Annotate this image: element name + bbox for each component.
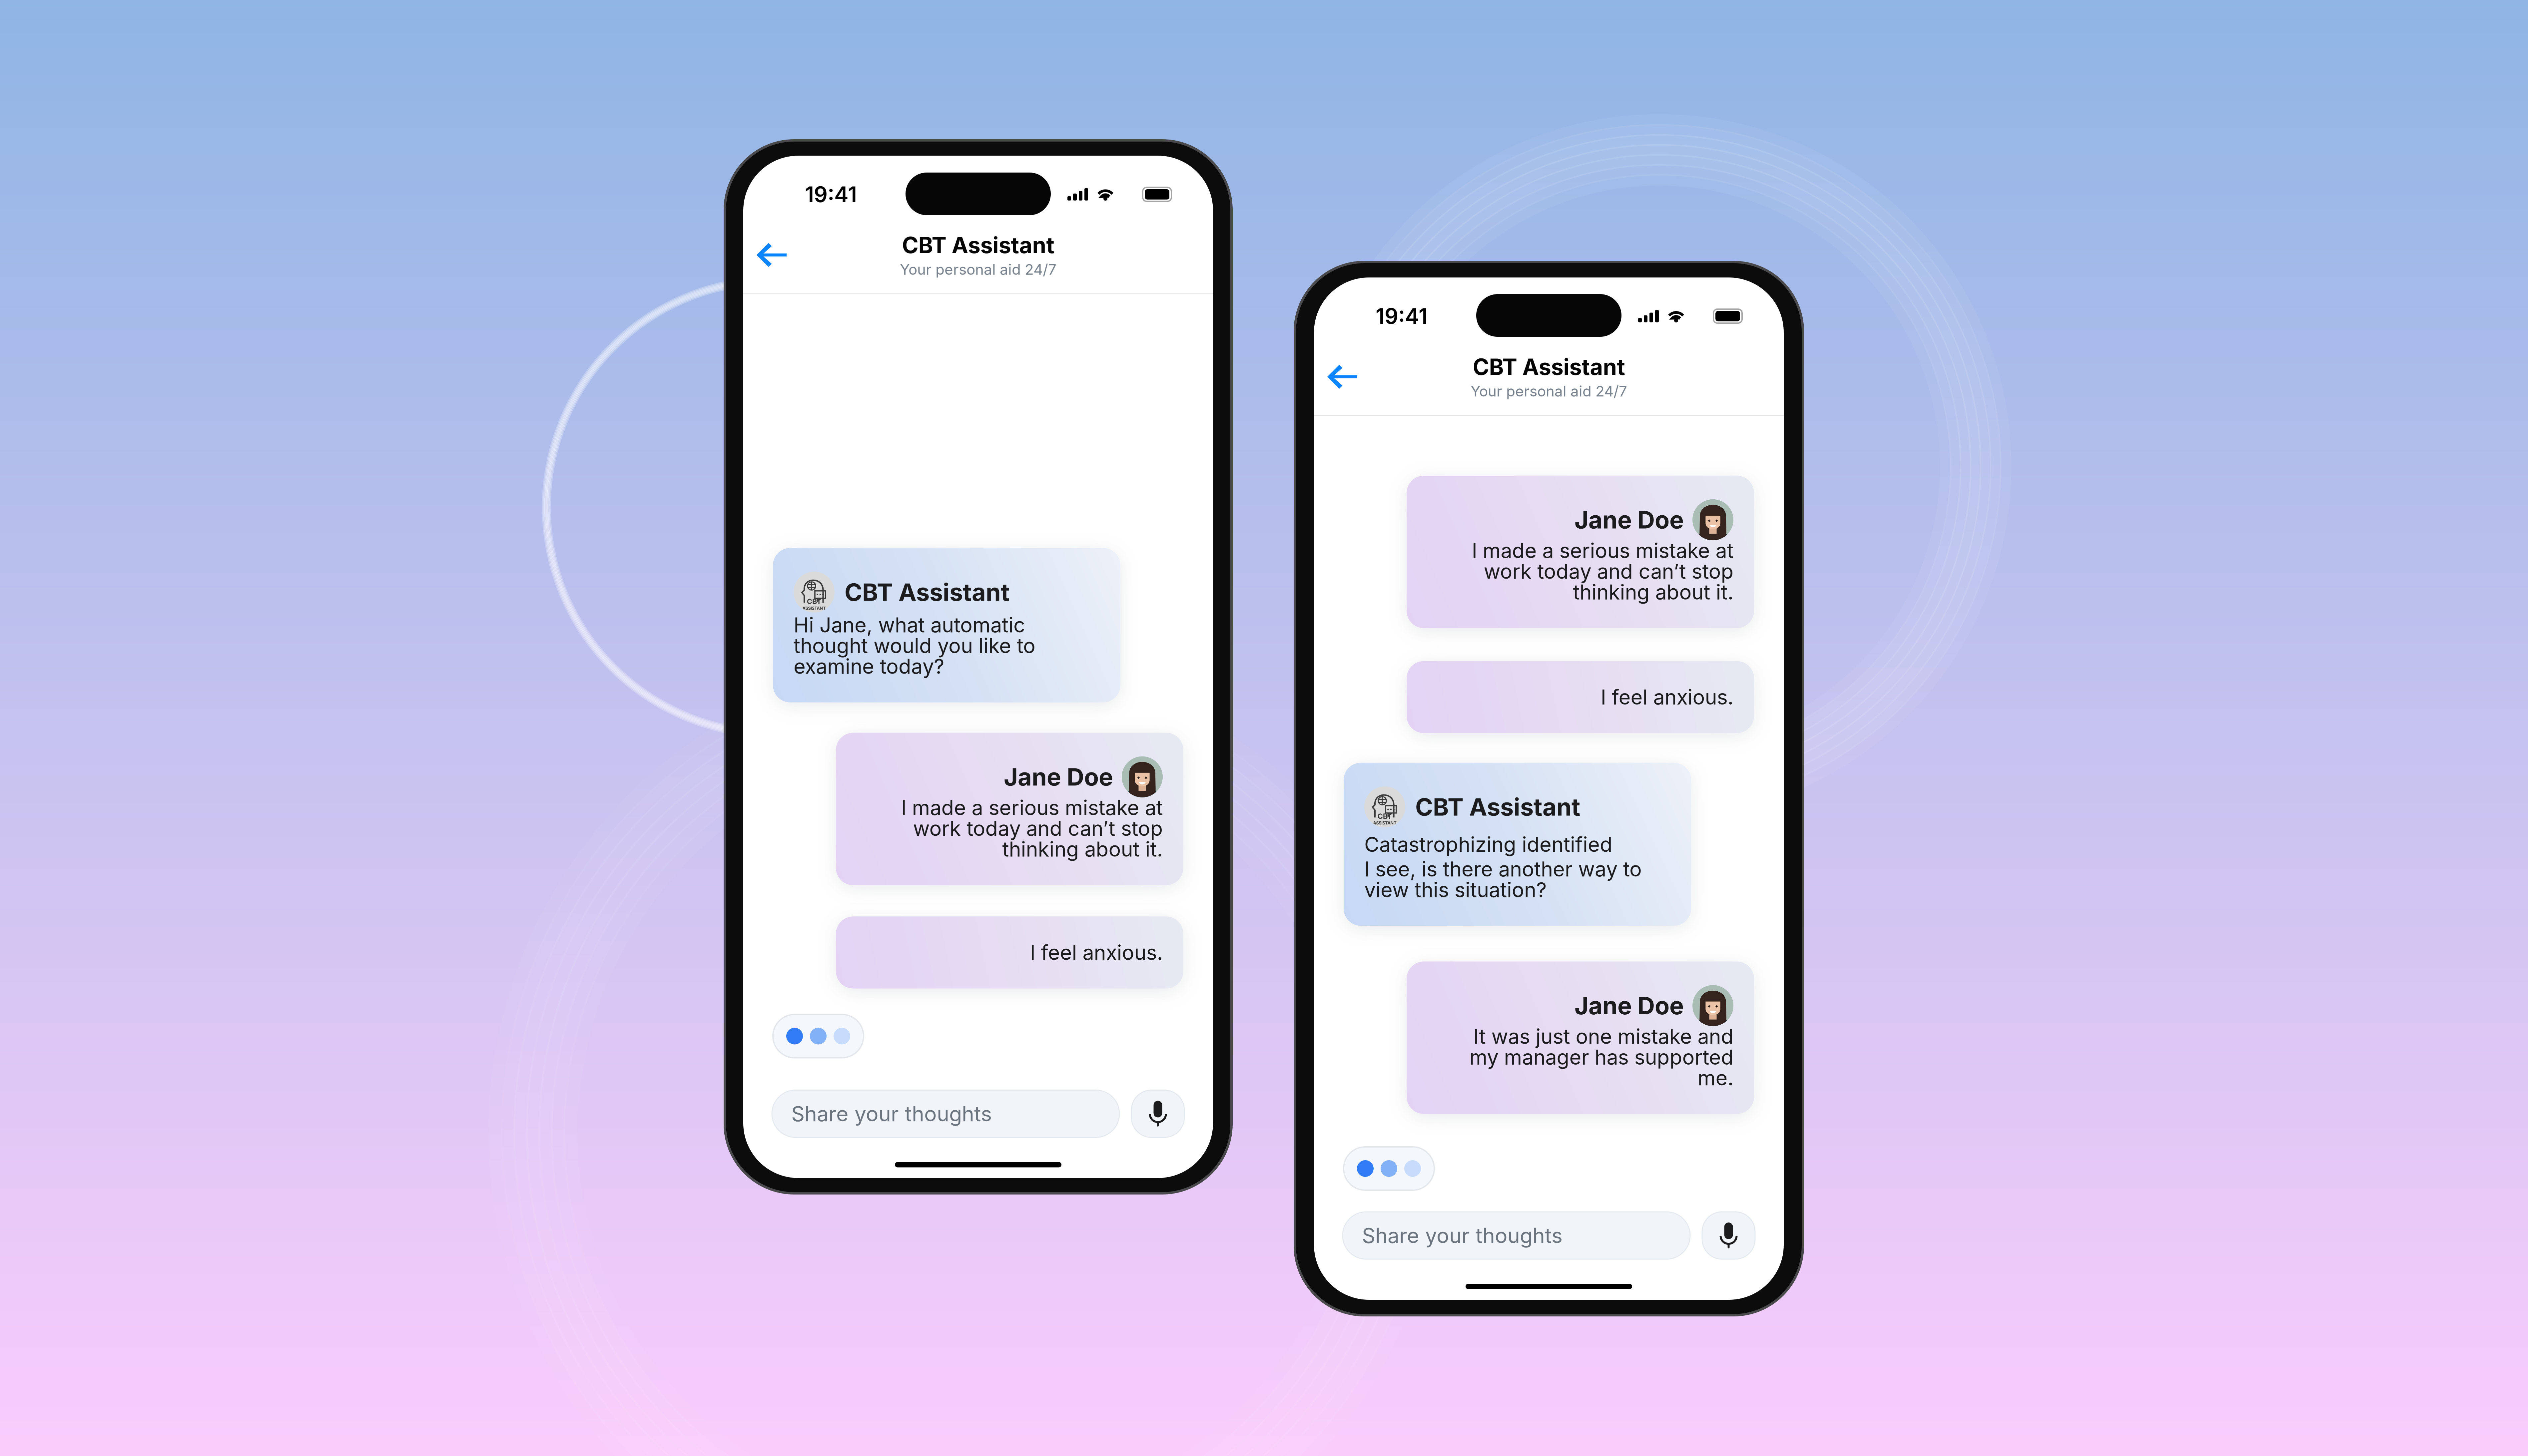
staticText: ASSISTANT [802,606,826,611]
staticText: It was just one mistake and my manager h… [1469,1024,1733,1090]
staticText: I see, is there another way to view this… [1364,857,1642,902]
button[interactable]: Back [1317,357,1367,397]
staticText: 19:41 [1376,303,1428,329]
staticText: Hi Jane, what automatic thought would yo… [794,613,1035,679]
staticText: I made a serious mistake at work today a… [1472,538,1733,604]
button[interactable]: Share your thoughts [1343,1212,1690,1259]
staticText: I made a serious mistake at work today a… [901,795,1163,862]
button[interactable]: Share your thoughts [772,1090,1119,1137]
button[interactable]: Voice input [1131,1090,1184,1137]
staticText: I feel anxious. [1030,940,1163,965]
staticText: CBT Assistant [1473,353,1625,380]
staticText: Share your thoughts [791,1101,992,1126]
staticText: CBT Assistant [902,232,1054,259]
staticText: Jane Doe [1575,991,1684,1020]
staticText: CBT Assistant [1415,792,1580,821]
staticText: Jane Doe [1004,762,1113,791]
staticText: Your personal aid 24/7 [900,261,1056,278]
staticText: Share your thoughts [1362,1223,1563,1248]
staticText: 19:41 [805,181,857,207]
staticText: I feel anxious. [1600,685,1733,709]
staticText: Catastrophizing identified [1364,832,1612,857]
staticText: CBT Assistant [845,578,1009,607]
staticText: Your personal aid 24/7 [1471,382,1627,400]
button[interactable]: Voice input [1702,1212,1755,1259]
staticText: CBT [807,597,821,606]
staticText: Jane Doe [1575,505,1684,534]
staticText: CBT [1378,812,1392,821]
staticText: ASSISTANT [1373,821,1396,826]
button[interactable]: Back [747,235,797,275]
